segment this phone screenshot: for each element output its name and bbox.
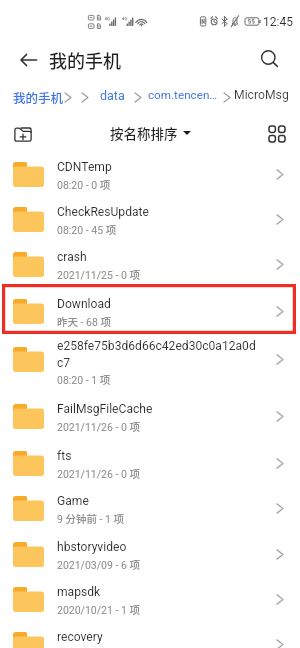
staticText: recovery (57, 630, 103, 644)
staticText: CDNTemp (57, 160, 112, 174)
staticText: CheckResUpdate (57, 205, 149, 219)
staticText: hbstoryvideo (57, 540, 127, 554)
button[interactable]: Game (0, 486, 300, 531)
button[interactable]: mapsdk (0, 577, 300, 622)
staticText: 2021/11/25 - 0 项 (57, 267, 140, 282)
button[interactable]: 按名称排序 (110, 123, 191, 143)
staticText: 昨天 - 68 项 (57, 314, 112, 329)
button[interactable]: Download (0, 289, 300, 334)
staticText: 2021/11/26 - 0 项 (57, 419, 140, 434)
staticText: 08:20 - 1 项 (57, 372, 111, 387)
staticText: 2021/03/09 - 6 项 (57, 557, 140, 572)
button[interactable]: crash (0, 242, 300, 287)
staticText: 我的手机 (49, 47, 121, 73)
button[interactable]: recovery (0, 622, 300, 648)
button[interactable]: e258fe75b3d6d66c42ed30c0a12a0dc7 (0, 334, 300, 395)
button[interactable]: CDNTemp (0, 152, 300, 197)
staticText: 08:20 - 0 项 (57, 177, 111, 192)
button[interactable]: Grid view (261, 118, 293, 150)
staticText: fts (57, 449, 72, 463)
staticText: Game (57, 494, 89, 508)
staticText: 12:45 (263, 15, 293, 29)
staticText: Download (57, 297, 111, 311)
button[interactable]: hbstoryvideo (0, 532, 300, 577)
button[interactable]: FailMsgFileCache (0, 394, 300, 439)
button[interactable]: Back (12, 43, 45, 76)
staticText: mapsdk (57, 585, 101, 599)
button[interactable]: 我的手机 (13, 88, 64, 106)
button[interactable]: data (100, 88, 125, 103)
button[interactable]: MicroMsg (234, 88, 289, 102)
staticText: 2021/11/26 - 0 项 (57, 466, 140, 481)
button[interactable]: New folder (6, 117, 40, 151)
button[interactable]: Search (253, 43, 286, 76)
staticText: FailMsgFileCache (57, 402, 153, 416)
button[interactable]: CheckResUpdate (0, 197, 300, 242)
staticText: e258fe75b3d6d66c42ed30c0a12a0dc7 (57, 339, 257, 369)
staticText: 9 分钟前 - 1 项 (57, 511, 125, 526)
staticText: 08:20 - 45 项 (57, 222, 117, 237)
button[interactable]: com.tencen… (148, 88, 218, 102)
staticText: 按名称排序 (110, 123, 178, 143)
staticText: 2020/10/21 - 1 项 (57, 602, 140, 617)
button[interactable]: fts (0, 441, 300, 486)
staticText: crash (57, 250, 87, 264)
